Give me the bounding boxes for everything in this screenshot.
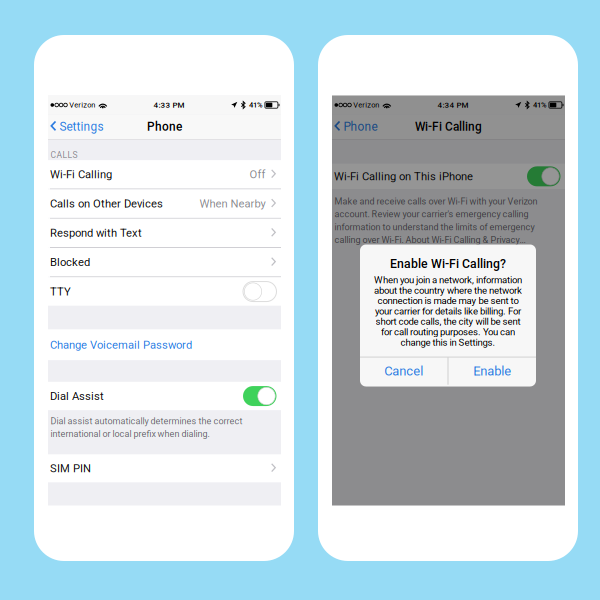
button[interactable]: Settings: [48, 115, 103, 139]
button[interactable]: [527, 166, 560, 186]
staticText: 4:33 PM: [154, 100, 185, 110]
staticText: Wi-Fi Calling: [50, 168, 112, 181]
staticText: TTY: [50, 285, 71, 298]
staticText: 41%: [249, 100, 263, 109]
button[interactable]: Wi-Fi Calling: [48, 160, 281, 189]
staticText: calling over Wi-Fi. About Wi-Fi Calling …: [334, 235, 525, 245]
staticText: change this in Settings.: [400, 337, 495, 348]
staticText: Verizon: [351, 101, 379, 109]
button[interactable]: Calls on Other Devices: [48, 189, 281, 218]
staticText: short code calls, the city will be sent: [375, 316, 520, 327]
staticText: Calls on Other Devices: [50, 197, 163, 210]
button[interactable]: [243, 282, 276, 302]
staticText: Enable: [473, 363, 511, 379]
staticText: connection is made may be sent to: [377, 295, 518, 306]
button[interactable]: Enable: [448, 357, 536, 385]
button[interactable]: Blocked: [48, 248, 281, 276]
staticText: Settings: [59, 120, 103, 134]
staticText: about the country where the network: [374, 285, 522, 296]
staticText: Change Voicemail Password: [50, 338, 192, 351]
staticText: 41%: [533, 100, 547, 109]
staticText: information to understand the limits of …: [334, 222, 534, 232]
staticText: 4:34 PM: [438, 100, 469, 110]
staticText: Phone: [147, 120, 182, 134]
staticText: for call routing purposes. You can: [381, 326, 515, 338]
staticText: SIM PIN: [50, 462, 91, 475]
staticText: account. Review your carrier's emergency…: [334, 209, 528, 219]
button[interactable]: Cancel: [360, 357, 448, 385]
staticText: When you join a network, information: [374, 274, 522, 286]
staticText: When Nearby: [200, 197, 266, 210]
button[interactable]: SIM PIN: [48, 454, 281, 482]
button[interactable]: Change Voicemail Password: [48, 329, 281, 360]
staticText: Blocked: [50, 256, 90, 269]
staticText: Wi-Fi Calling on This iPhone: [334, 170, 473, 183]
staticText: your carrier for details like billing. F…: [375, 305, 521, 317]
staticText: international or local prefix when diali…: [50, 429, 209, 439]
staticText: Make and receive calls over Wi-Fi with y…: [334, 196, 537, 207]
button[interactable]: Respond with Text: [48, 219, 281, 247]
staticText: Off: [250, 168, 266, 181]
staticText: Respond with Text: [50, 226, 142, 239]
staticText: Dial Assist: [50, 389, 104, 403]
staticText: Enable Wi-Fi Calling?: [390, 257, 506, 271]
staticText: Verizon: [67, 101, 95, 109]
staticText: Cancel: [384, 363, 423, 379]
staticText: CALLS: [50, 150, 77, 160]
staticText: Phone: [343, 120, 377, 134]
staticText: Wi-Fi Calling: [415, 120, 482, 134]
button[interactable]: [243, 386, 276, 406]
staticText: Dial assist automatically determines the…: [50, 416, 242, 426]
button[interactable]: Phone: [332, 115, 377, 139]
